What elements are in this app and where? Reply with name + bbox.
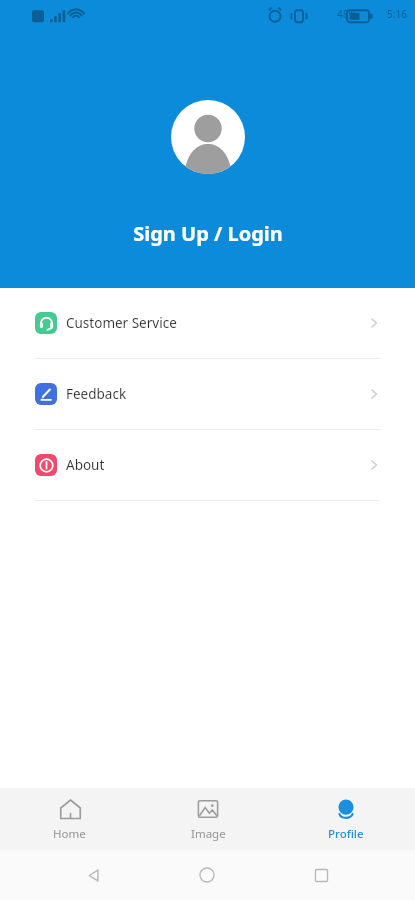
button[interactable]: Home — [0, 788, 139, 850]
staticText: Profile — [328, 826, 364, 842]
button[interactable]: Avatar — [171, 100, 245, 174]
staticText: Home — [53, 826, 86, 842]
button[interactable]: Feedback — [0, 359, 415, 429]
button[interactable]: Home — [187, 855, 227, 895]
staticText: Feedback — [66, 385, 127, 403]
staticText: Image — [191, 826, 226, 842]
button[interactable]: Image — [139, 788, 277, 850]
button[interactable]: Profile — [277, 788, 415, 850]
button[interactable]: Recent apps — [301, 855, 341, 895]
staticText: Sign Up / Login — [133, 220, 283, 247]
button[interactable]: Back — [73, 855, 113, 895]
button[interactable]: Customer Service — [0, 288, 415, 358]
staticText: Customer Service — [66, 314, 177, 332]
staticText: 48% — [337, 7, 357, 21]
button[interactable]: Sign Up / Login — [123, 216, 293, 251]
staticText: 5:16 — [387, 7, 407, 21]
staticText: About — [66, 456, 105, 474]
button[interactable]: About — [0, 430, 415, 500]
